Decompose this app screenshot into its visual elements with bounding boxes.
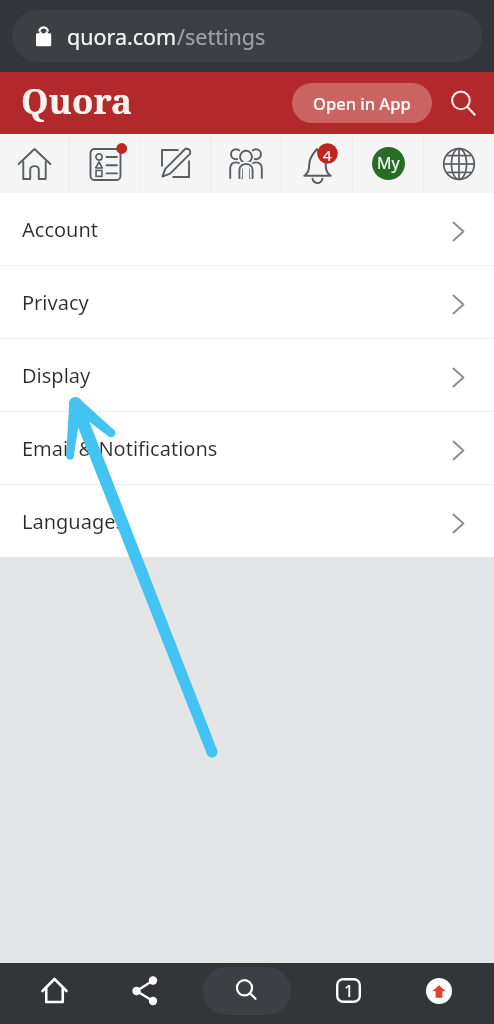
- button[interactable]: quora.com: [12, 10, 482, 62]
- button[interactable]: Email & Notifications: [0, 412, 494, 485]
- staticText: quora.com: [67, 22, 177, 51]
- button[interactable]: Search: [444, 84, 482, 122]
- staticText: Privacy: [22, 289, 89, 316]
- button[interactable]: Display: [0, 339, 494, 412]
- staticText: Open in App: [313, 92, 411, 114]
- button[interactable]: Account: [0, 193, 494, 266]
- staticText: Quora: [21, 77, 132, 125]
- button[interactable]: Privacy: [0, 266, 494, 339]
- button[interactable]: Spaces: [211, 134, 281, 193]
- button[interactable]: Languages: [0, 485, 494, 557]
- staticText: My: [377, 152, 400, 174]
- staticText: /settings: [177, 22, 266, 51]
- staticText: 4: [323, 145, 332, 165]
- button[interactable]: Search: [203, 967, 291, 1015]
- button[interactable]: Share: [96, 960, 195, 1021]
- staticText: Languages: [22, 508, 126, 535]
- button[interactable]: Home: [5, 960, 103, 1021]
- staticText: 1: [344, 979, 354, 1002]
- button[interactable]: Open in App: [292, 83, 432, 123]
- button[interactable]: Home: [0, 134, 69, 193]
- staticText: Email & Notifications: [22, 435, 218, 462]
- staticText: Display: [22, 362, 91, 389]
- button[interactable]: Scroll to top: [389, 960, 488, 1021]
- button[interactable]: Write: [140, 134, 210, 193]
- button[interactable]: Tabs: [299, 960, 398, 1021]
- button[interactable]: Answers: [70, 134, 139, 193]
- button[interactable]: Language: [424, 134, 494, 193]
- staticText: Account: [22, 216, 99, 243]
- button[interactable]: Notifications: [282, 134, 352, 193]
- button[interactable]: Profile: [353, 134, 423, 193]
